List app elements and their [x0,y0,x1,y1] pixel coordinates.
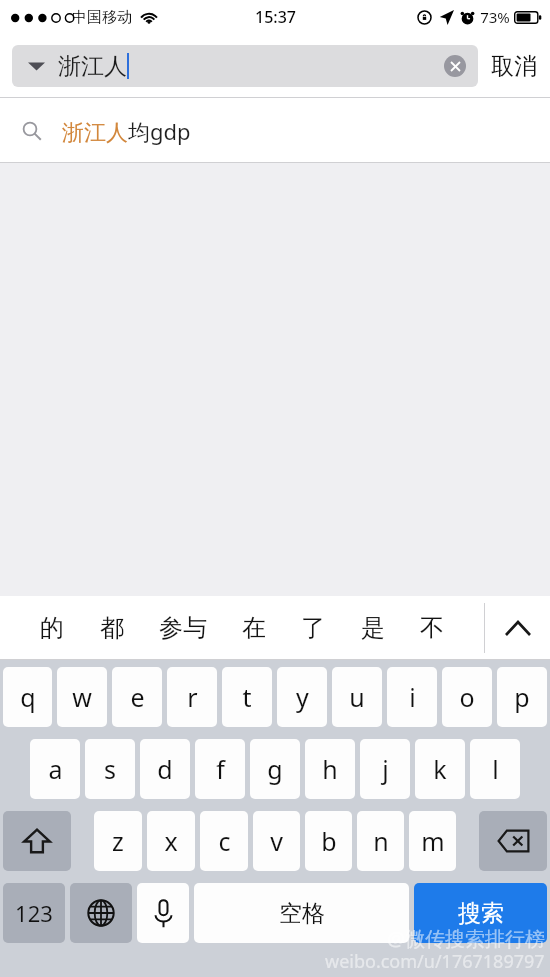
button[interactable]: Next keyboard [70,883,132,943]
staticText: k [433,752,447,786]
button[interactable]: 浙江人 [12,45,478,87]
staticText: 空格 [279,899,325,928]
staticText: j [382,752,389,786]
button[interactable]: 空格 [194,883,409,943]
staticText: 中国移动 [72,8,132,27]
button[interactable]: k [415,739,465,799]
staticText: s [104,752,116,786]
button[interactable]: b [305,811,352,871]
button[interactable]: Shift [3,811,71,871]
button[interactable]: 都 [100,613,124,643]
button[interactable]: 的 [40,613,64,643]
staticText: b [321,824,337,858]
button[interactable]: 取消 [478,41,550,91]
button[interactable]: 不 [420,613,444,643]
button[interactable]: v [253,811,300,871]
button[interactable]: 了 [301,613,325,643]
staticText: c [218,824,231,858]
button[interactable]: Voice input [137,883,189,943]
staticText: m [421,824,445,858]
button[interactable]: 在 [242,613,266,643]
button[interactable]: 搜索 [414,883,547,943]
staticText: 123 [15,898,53,928]
button[interactable]: c [200,811,248,871]
button[interactable]: x [147,811,195,871]
button[interactable]: m [409,811,456,871]
staticText: 在 [242,613,266,643]
button[interactable]: Clear text [444,55,466,77]
staticText: v [270,824,283,858]
staticText: 浙江人 [58,52,127,81]
button[interactable]: y [277,667,327,727]
staticText: @微传搜索排行榜 [387,925,545,952]
staticText: y [296,680,309,714]
staticText: r [187,680,198,714]
button[interactable]: n [357,811,404,871]
staticText: a [48,752,63,786]
staticText: h [322,752,338,786]
button[interactable]: 123 [3,883,65,943]
button[interactable]: u [332,667,382,727]
staticText: g [267,752,283,786]
staticText: u [349,680,365,714]
staticText: 的 [40,613,64,643]
staticText: 是 [361,613,385,643]
button[interactable]: p [497,667,547,727]
staticText: f [216,752,225,786]
staticText: x [164,824,178,858]
staticText: z [112,824,124,858]
button[interactable]: s [85,739,135,799]
button[interactable]: z [94,811,142,871]
staticText: l [492,752,499,786]
button[interactable]: d [140,739,190,799]
staticText: i [409,680,416,714]
staticText: 73% [480,7,510,27]
staticText: 不 [420,613,444,643]
staticText: 搜索 [458,899,504,928]
button[interactable]: i [387,667,437,727]
staticText: weibo.com/u/1767189797 [325,949,545,974]
button[interactable]: g [250,739,300,799]
button[interactable]: Expand candidates [485,596,550,660]
button[interactable]: 是 [361,613,385,643]
button[interactable]: a [30,739,80,799]
button[interactable]: q [3,667,52,727]
button[interactable]: o [442,667,492,727]
staticText: t [242,680,252,714]
button[interactable]: j [360,739,410,799]
button[interactable]: t [222,667,272,727]
button[interactable]: 参与 [159,613,207,643]
staticText: p [514,680,530,714]
staticText: n [373,824,389,858]
button[interactable]: r [167,667,217,727]
staticText: q [20,680,36,714]
button[interactable]: e [112,667,162,727]
button[interactable]: 浙江人均gdp [0,98,550,163]
staticText: w [72,680,92,714]
staticText: 浙江人均gdp [62,116,191,146]
staticText: d [157,752,173,786]
staticText: 都 [100,613,124,643]
staticText: 15:37 [255,6,296,28]
button[interactable]: Backspace [479,811,547,871]
button[interactable]: f [195,739,245,799]
staticText: 参与 [159,613,207,643]
staticText: o [459,680,475,714]
staticText: 了 [301,613,325,643]
button[interactable]: l [470,739,520,799]
staticText: e [130,680,145,714]
staticText: 取消 [491,52,537,81]
button[interactable]: w [57,667,107,727]
button[interactable]: h [305,739,355,799]
